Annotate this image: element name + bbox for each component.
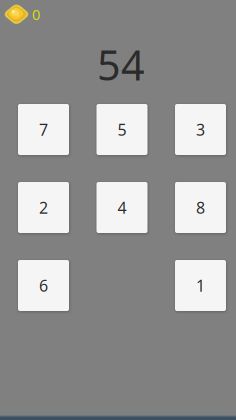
staticText: 8 [196, 197, 205, 218]
staticText: 5 [117, 119, 126, 140]
staticText: 2 [39, 197, 48, 218]
button[interactable]: Coins, 0 [0, 0, 40, 24]
button[interactable]: 3 [175, 104, 226, 155]
button[interactable]: 5 [96, 104, 147, 155]
staticText: 54 [97, 37, 145, 92]
button[interactable]: 8 [175, 182, 226, 233]
staticText: 6 [39, 275, 48, 296]
staticText: 4 [117, 197, 126, 218]
button[interactable]: 6 [18, 260, 69, 311]
button[interactable]: 7 [18, 104, 69, 155]
button[interactable]: 1 [175, 260, 226, 311]
button[interactable]: 4 [96, 182, 147, 233]
staticText: 7 [39, 119, 48, 140]
staticText: 0 [32, 4, 40, 24]
staticText: 3 [196, 119, 205, 140]
staticText: 1 [196, 275, 205, 296]
button[interactable]: 2 [18, 182, 69, 233]
